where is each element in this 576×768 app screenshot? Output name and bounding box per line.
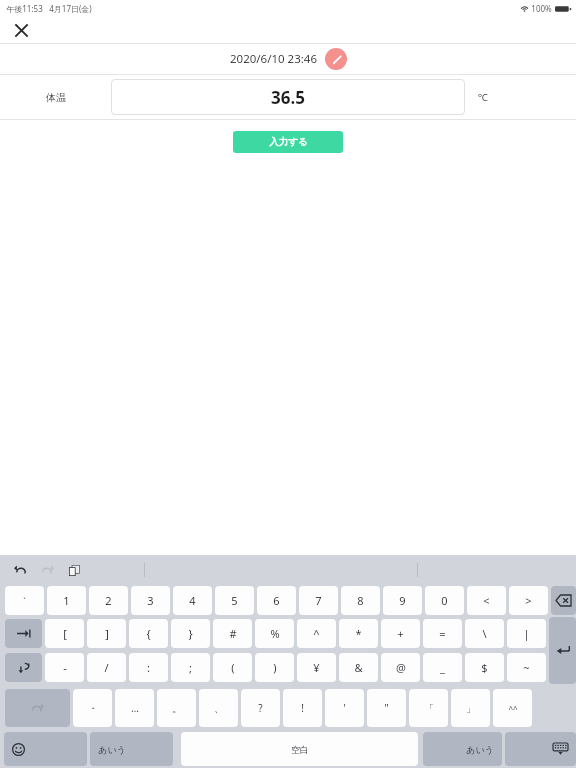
staticText: ": [384, 701, 389, 715]
button[interactable]: Enter: [549, 617, 576, 684]
button[interactable]: }: [171, 619, 210, 648]
button[interactable]: *: [339, 619, 378, 648]
button[interactable]: Backspace: [551, 586, 576, 615]
button[interactable]: Undo: [10, 560, 30, 580]
button[interactable]: _: [423, 653, 462, 682]
button[interactable]: 0: [425, 586, 464, 615]
staticText: *: [355, 626, 362, 641]
button[interactable]: ¥: [297, 653, 336, 682]
staticText: ]: [105, 626, 109, 641]
staticText: <: [483, 593, 490, 608]
button[interactable]: [: [45, 619, 84, 648]
staticText: _: [440, 660, 445, 675]
button[interactable]: 、: [199, 689, 238, 727]
button[interactable]: :: [129, 653, 168, 682]
button[interactable]: 8: [341, 586, 380, 615]
button[interactable]: @: [381, 653, 420, 682]
staticText: #: [229, 626, 237, 641]
staticText: 4: [189, 593, 196, 608]
button[interactable]: <: [467, 586, 506, 615]
staticText: ): [273, 660, 277, 675]
staticText: 。: [172, 702, 182, 715]
button[interactable]: Edit date: [325, 48, 347, 70]
button[interactable]: %: [255, 619, 294, 648]
staticText: ;: [189, 660, 192, 675]
staticText: あいう: [98, 744, 126, 755]
staticText: -: [63, 660, 67, 675]
staticText: +: [397, 626, 404, 641]
button[interactable]: Paste: [64, 560, 84, 580]
button[interactable]: ^^: [493, 689, 532, 727]
button[interactable]: 入力する: [233, 131, 343, 153]
staticText: (: [231, 660, 235, 675]
button[interactable]: 2: [89, 586, 128, 615]
button[interactable]: ?: [241, 689, 280, 727]
button[interactable]: \: [465, 619, 504, 648]
button[interactable]: 7: [299, 586, 338, 615]
button[interactable]: &: [339, 653, 378, 682]
button[interactable]: ]: [87, 619, 126, 648]
button[interactable]: あいう: [90, 732, 173, 766]
button[interactable]: 36.5: [111, 79, 465, 115]
button[interactable]: ;: [171, 653, 210, 682]
button[interactable]: ": [367, 689, 406, 727]
button[interactable]: 3: [131, 586, 170, 615]
button[interactable]: Shift: [5, 653, 42, 682]
staticText: 1: [63, 593, 70, 608]
button[interactable]: +: [381, 619, 420, 648]
button[interactable]: !: [283, 689, 322, 727]
button[interactable]: =: [423, 619, 462, 648]
button[interactable]: 5: [215, 586, 254, 615]
staticText: }: [188, 626, 193, 641]
button[interactable]: (: [213, 653, 252, 682]
button[interactable]: >: [509, 586, 548, 615]
button[interactable]: ~: [507, 653, 546, 682]
staticText: 5: [231, 593, 238, 608]
button[interactable]: #: [213, 619, 252, 648]
button[interactable]: Tab: [5, 619, 42, 648]
staticText: あいう: [466, 744, 494, 755]
staticText: @: [396, 660, 406, 675]
staticText: 100%: [531, 3, 552, 14]
button[interactable]: 9: [383, 586, 422, 615]
staticText: >: [525, 593, 532, 608]
staticText: `: [23, 595, 26, 607]
button[interactable]: 「: [409, 689, 448, 727]
button[interactable]: ^: [297, 619, 336, 648]
staticText: ~: [523, 660, 530, 675]
button[interactable]: Hide keyboard: [505, 732, 576, 766]
button[interactable]: ': [325, 689, 364, 727]
button[interactable]: …: [115, 689, 154, 727]
button[interactable]: `: [5, 586, 44, 615]
button[interactable]: ): [255, 653, 294, 682]
button[interactable]: /: [87, 653, 126, 682]
button[interactable]: Close: [8, 17, 34, 43]
button[interactable]: |: [507, 619, 546, 648]
button[interactable]: Redo: [37, 560, 57, 580]
staticText: :: [147, 660, 150, 675]
staticText: 36.5: [271, 86, 305, 109]
staticText: $: [481, 660, 488, 675]
staticText: =: [439, 626, 446, 641]
staticText: /: [104, 660, 109, 675]
button[interactable]: 6: [257, 586, 296, 615]
staticText: 体温: [46, 91, 66, 104]
staticText: 2: [105, 593, 112, 608]
button[interactable]: 空白: [181, 732, 418, 766]
button[interactable]: Emoji: [4, 732, 87, 766]
staticText: ・: [88, 702, 98, 715]
staticText: …: [131, 701, 139, 715]
staticText: 3: [147, 593, 154, 608]
staticText: %: [270, 626, 280, 641]
staticText: 4月17日(金): [49, 3, 92, 14]
button[interactable]: ・: [73, 689, 112, 727]
button[interactable]: あいう: [423, 732, 502, 766]
button[interactable]: $: [465, 653, 504, 682]
button[interactable]: 4: [173, 586, 212, 615]
button[interactable]: {: [129, 619, 168, 648]
button[interactable]: 1: [47, 586, 86, 615]
button[interactable]: 。: [157, 689, 196, 727]
button[interactable]: -: [45, 653, 84, 682]
button[interactable]: 」: [451, 689, 490, 727]
